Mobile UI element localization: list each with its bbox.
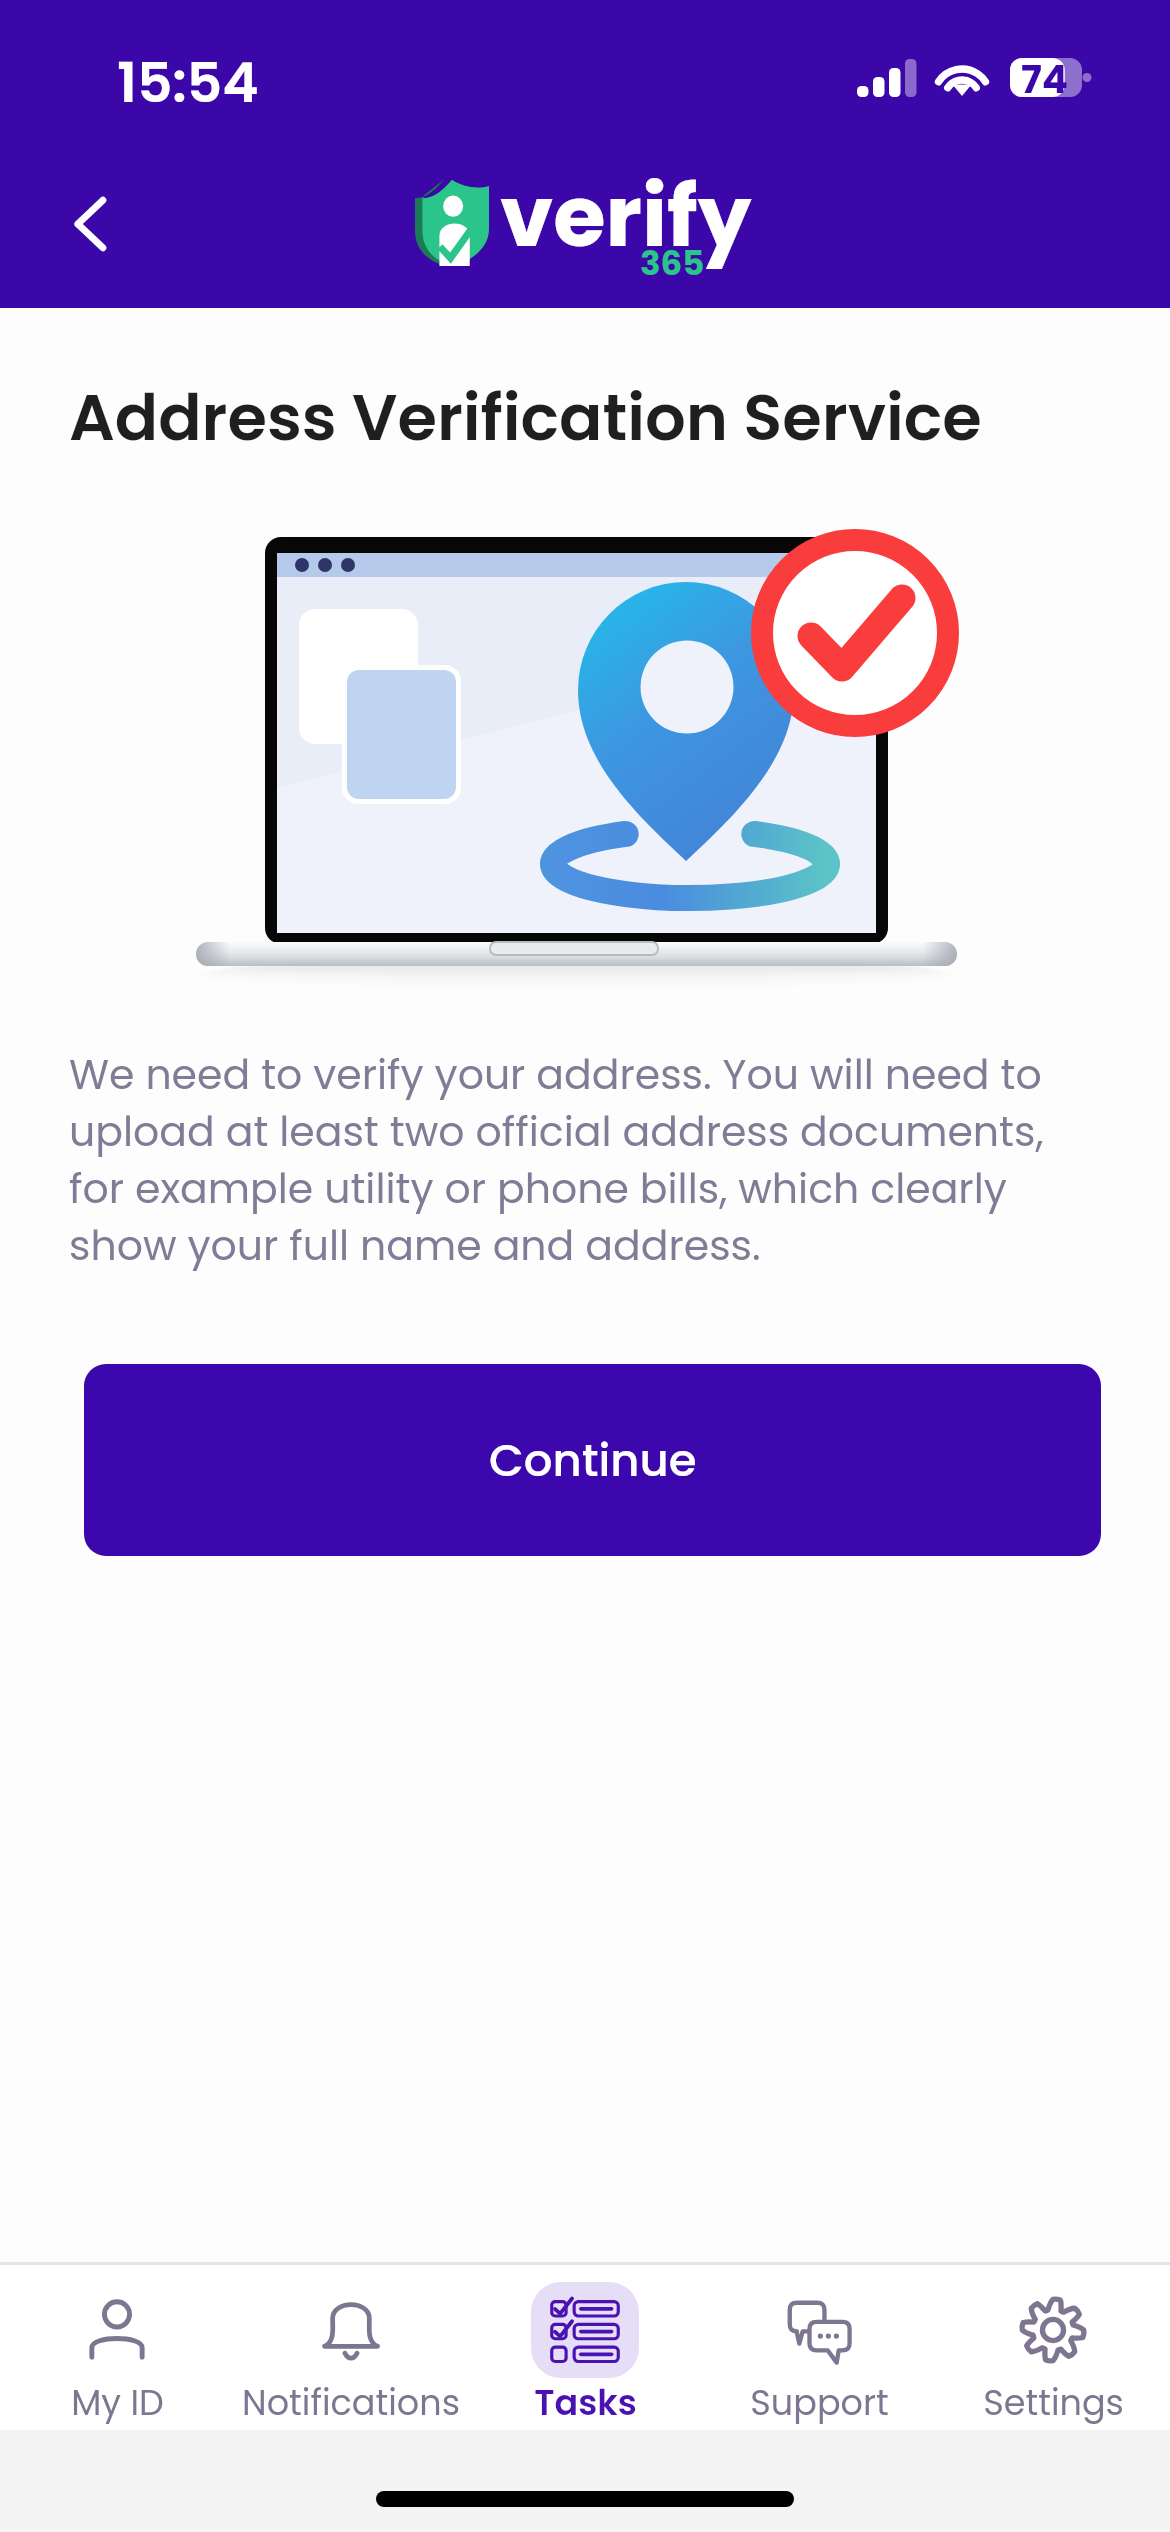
button[interactable]: Tasks	[468, 2265, 702, 2430]
button[interactable]: Notifications	[234, 2265, 468, 2430]
staticText: verify	[500, 157, 752, 269]
button[interactable]: Support	[702, 2265, 936, 2430]
button[interactable]: Continue	[84, 1364, 1101, 1556]
staticText: 15:54	[117, 44, 259, 121]
staticText: Tasks	[534, 2378, 637, 2427]
button[interactable]: Back	[35, 168, 147, 280]
staticText: Settings	[983, 2378, 1124, 2427]
staticText: We need to verify your address. You will…	[69, 1046, 1069, 1275]
button[interactable]: My ID	[0, 2265, 234, 2430]
staticText: Support	[750, 2378, 889, 2427]
staticText: Address Verification Service	[69, 373, 982, 463]
button[interactable]: Settings	[936, 2265, 1170, 2430]
staticText: 74	[1021, 52, 1069, 107]
staticText: 365	[640, 239, 705, 287]
staticText: Continue	[489, 1429, 697, 1492]
staticText: Notifications	[242, 2378, 460, 2427]
staticText: My ID	[71, 2378, 164, 2427]
